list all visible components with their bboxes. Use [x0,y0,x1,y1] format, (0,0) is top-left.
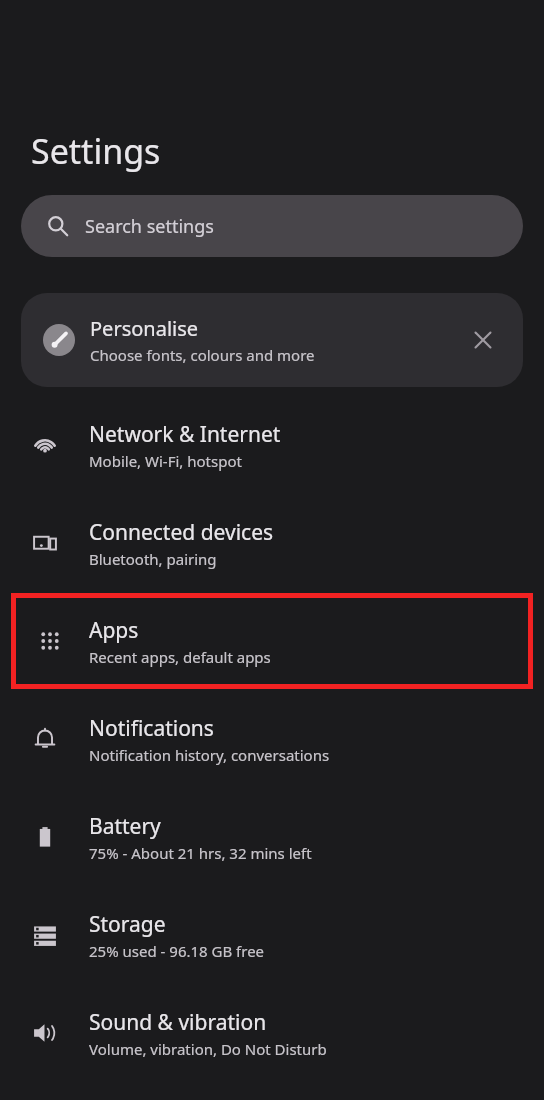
staticText: Notification history, conversations [89,745,330,765]
button[interactable]: Connected devices [0,494,544,592]
staticText: Battery [89,812,161,841]
staticText: Mobile, Wi-Fi, hotspot [89,451,242,471]
button[interactable]: Battery [0,788,544,886]
staticText: Volume, vibration, Do Not Disturb [89,1039,327,1059]
staticText: Search settings [85,214,214,239]
staticText: 25% used - 96.18 GB free [89,941,265,961]
button[interactable]: Dismiss [461,318,505,362]
staticText: Notifications [89,714,214,743]
button[interactable]: Personalise [21,293,523,387]
staticText: Sound & vibration [89,1008,267,1037]
button[interactable]: Apps [11,593,533,689]
staticText: Connected devices [89,518,274,547]
button[interactable]: Storage [0,886,544,984]
staticText: Apps [89,616,139,645]
staticText: Settings [31,128,161,174]
staticText: Storage [89,910,166,939]
button[interactable]: Search settings [21,195,523,257]
staticText: Network & Internet [89,420,281,449]
staticText: Personalise [90,315,199,342]
staticText: 75% - About 21 hrs, 32 mins left [89,843,312,863]
staticText: Bluetooth, pairing [89,549,217,569]
staticText: Recent apps, default apps [89,647,271,667]
button[interactable]: Sound & vibration [0,984,544,1082]
button[interactable]: Notifications [0,690,544,788]
staticText: Choose fonts, colours and more [90,345,315,365]
button[interactable]: Network & Internet [0,396,544,494]
